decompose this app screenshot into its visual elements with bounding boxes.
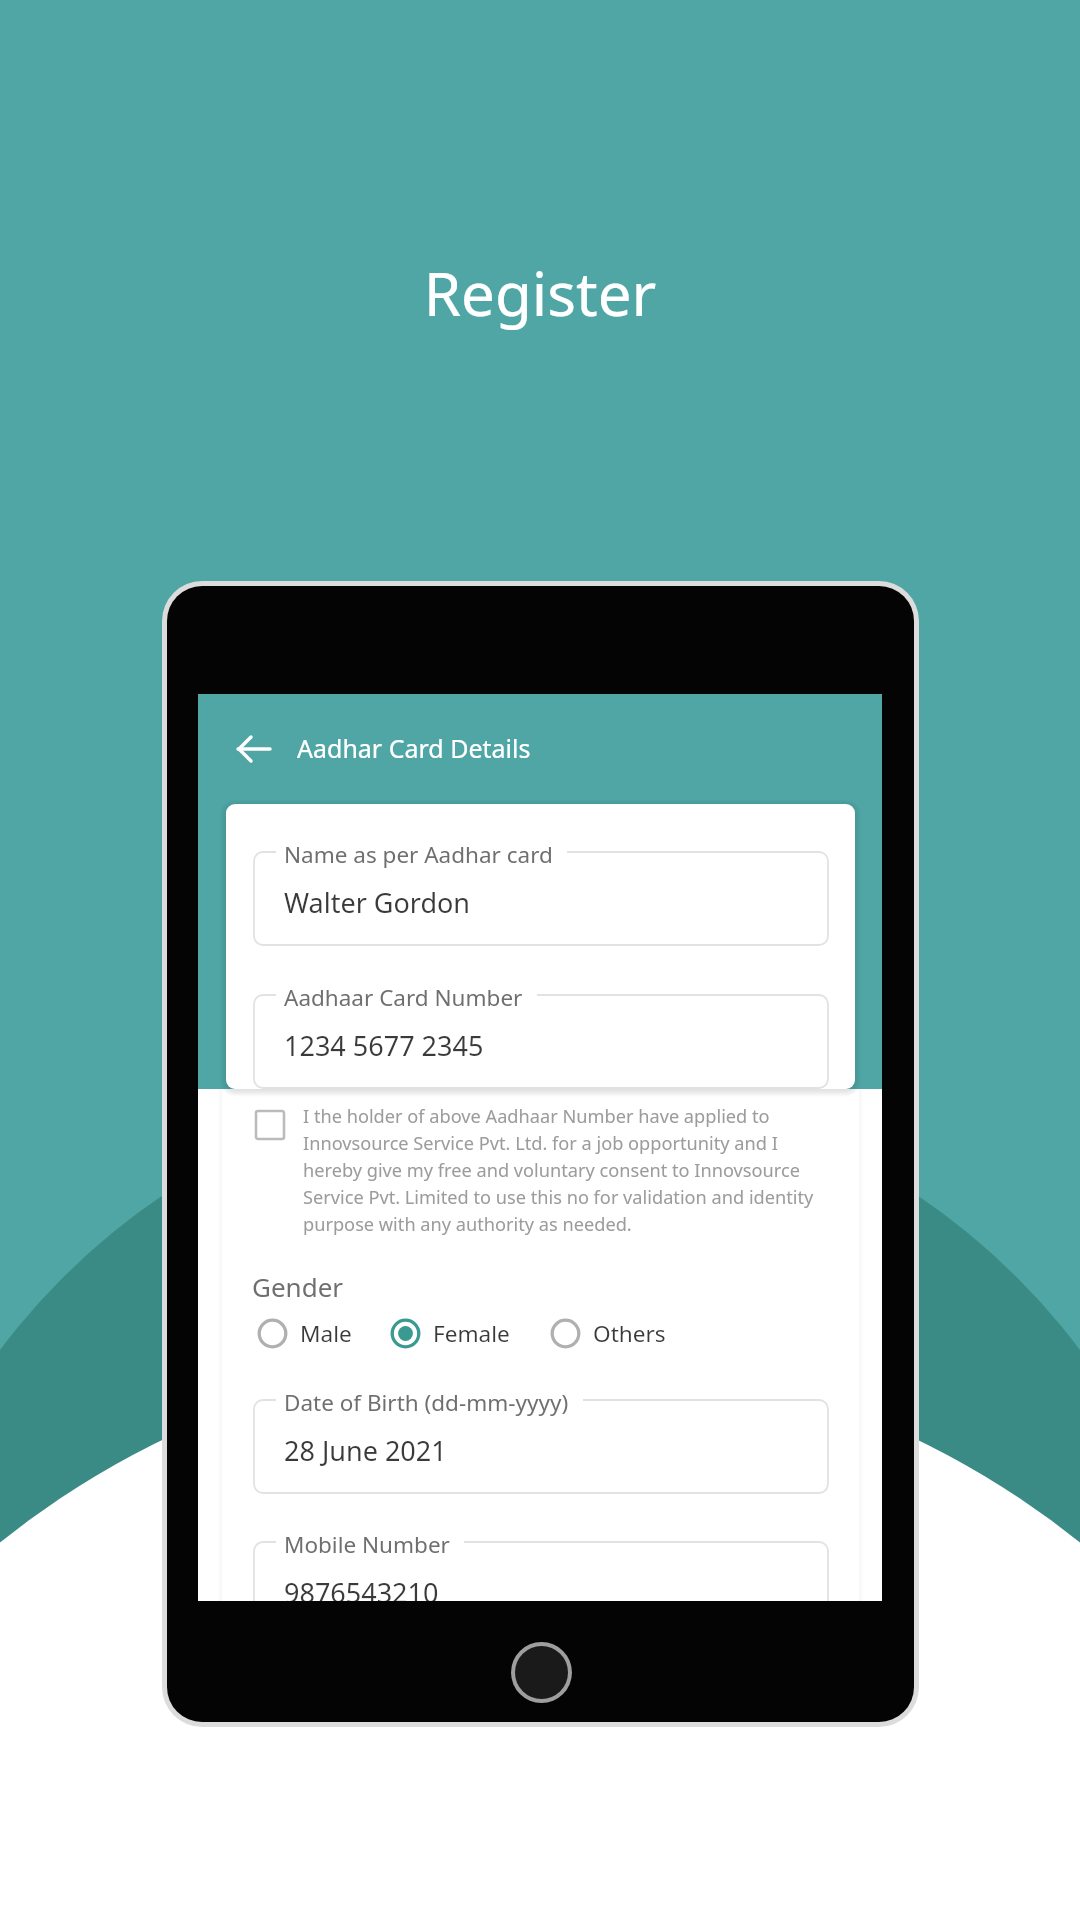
staticText: 28 June 2021 [284, 1432, 447, 1469]
button[interactable]: Male [257, 1316, 352, 1350]
staticText: Walter Gordon [284, 884, 471, 921]
button[interactable]: Consent checkbox [255, 1110, 285, 1140]
staticText: Aadhar Card Details [297, 731, 531, 765]
staticText: Mobile Number [284, 1529, 450, 1560]
button[interactable]: Others [550, 1316, 666, 1350]
staticText: Gender [252, 1269, 344, 1304]
button[interactable]: Back [232, 727, 276, 771]
staticText: Register [0, 252, 1080, 334]
button[interactable]: Home [515, 1646, 568, 1699]
staticText: 1234 5677 2345 [284, 1027, 484, 1064]
staticText: 9876543210 [284, 1574, 439, 1601]
staticText: Aadhaar Card Number [284, 982, 523, 1013]
staticText: Name as per Aadhar card [284, 839, 553, 870]
staticText: Others [593, 1318, 666, 1349]
staticText: I the holder of above Aadhaar Number hav… [303, 1104, 827, 1236]
staticText: Male [300, 1318, 352, 1349]
staticText: Date of Birth (dd-mm-yyyy) [284, 1387, 569, 1418]
staticText: Female [433, 1318, 510, 1349]
button[interactable]: Female [390, 1316, 510, 1350]
